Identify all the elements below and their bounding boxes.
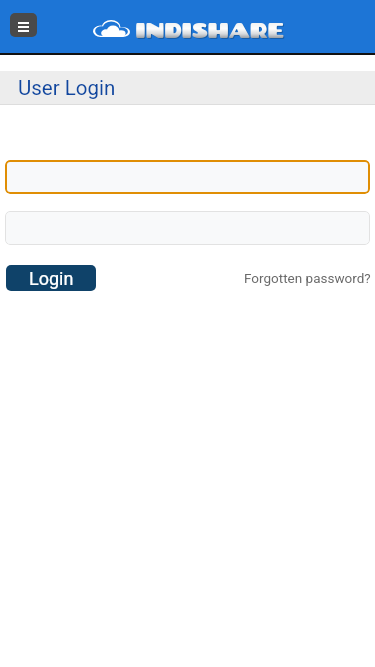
button[interactable]: Login (6, 265, 96, 291)
button[interactable] (5, 160, 370, 194)
button[interactable] (5, 211, 370, 245)
staticText: Login (29, 268, 74, 289)
staticText: INDISHARE (135, 18, 284, 42)
staticText: INDISHARE (136, 19, 285, 43)
staticText: User Login (18, 76, 116, 100)
button[interactable]: Forgotten password? (244, 265, 375, 291)
staticText: Forgotten password? (244, 270, 371, 286)
button[interactable]: Menu (10, 13, 37, 37)
